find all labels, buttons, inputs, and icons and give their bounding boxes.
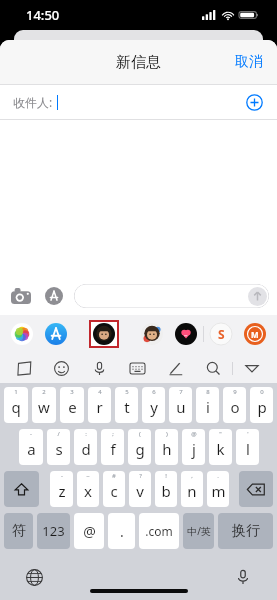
- staticText: q: [11, 397, 21, 417]
- button[interactable]: [135, 315, 169, 353]
- staticText: ): [166, 430, 168, 438]
- button[interactable]: 3: [60, 387, 84, 423]
- button[interactable]: !: [155, 471, 177, 507]
- button[interactable]: Add contact: [241, 89, 267, 115]
- button[interactable]: 123: [37, 513, 70, 549]
- button[interactable]: (: [128, 429, 151, 465]
- button[interactable]: 5: [115, 387, 138, 423]
- button[interactable]: ,: [181, 471, 203, 507]
- button[interactable]: 符: [4, 513, 33, 549]
- staticText: j: [192, 439, 196, 459]
- button[interactable]: [169, 315, 203, 353]
- button[interactable]: Hide keyboard: [233, 353, 271, 383]
- button[interactable]: 2: [32, 387, 56, 423]
- button[interactable]: Backspace: [239, 471, 273, 507]
- staticText: M: [251, 329, 259, 340]
- staticText: 9: [233, 388, 237, 396]
- staticText: -: [30, 430, 32, 438]
- staticText: a: [27, 439, 36, 459]
- staticText: /: [57, 430, 60, 438]
- button[interactable]: M: [238, 315, 272, 353]
- button[interactable]: 1: [4, 387, 28, 423]
- button[interactable]: App Store: [41, 283, 67, 309]
- staticText: (: [139, 430, 141, 438]
- button[interactable]: Send: [74, 284, 269, 308]
- staticText: :: [85, 430, 87, 438]
- button[interactable]: Dictation: [231, 565, 255, 589]
- button[interactable]: 换行: [218, 513, 273, 549]
- button[interactable]: Keyboard: [118, 353, 156, 383]
- button[interactable]: [39, 315, 73, 353]
- staticText: d: [81, 439, 91, 459]
- staticText: 0: [260, 388, 264, 396]
- button[interactable]: Emoji: [43, 353, 80, 383]
- button[interactable]: ': [236, 429, 259, 465]
- button[interactable]: Change keyboard: [22, 565, 46, 589]
- staticText: 换行: [232, 522, 260, 540]
- staticText: 14:50: [26, 6, 60, 24]
- button[interactable]: @: [74, 513, 104, 549]
- button[interactable]: @: [182, 429, 205, 465]
- button[interactable]: Search: [194, 353, 232, 383]
- staticText: p: [257, 397, 267, 417]
- button[interactable]: ): [155, 429, 178, 465]
- button[interactable]: 0: [250, 387, 273, 423]
- staticText: 符: [12, 522, 26, 540]
- button[interactable]: ;: [101, 429, 124, 465]
- staticText: f: [110, 439, 116, 459]
- staticText: e: [68, 397, 77, 417]
- button[interactable]: #: [103, 471, 125, 507]
- button[interactable]: /: [47, 429, 70, 465]
- staticText: b: [161, 481, 171, 501]
- button[interactable]: Send: [248, 287, 267, 306]
- button[interactable]: 8: [196, 387, 219, 423]
- staticText: ?: [139, 472, 142, 480]
- staticText: s: [55, 439, 63, 459]
- button[interactable]: Shift: [4, 471, 39, 507]
- button[interactable]: 4: [88, 387, 111, 423]
- button[interactable]: Handwriting: [156, 353, 194, 383]
- staticText: .: [217, 472, 219, 480]
- staticText: w: [38, 397, 50, 417]
- button[interactable]: 6: [142, 387, 165, 423]
- staticText: 2: [42, 388, 46, 396]
- button[interactable]: 中/英: [183, 513, 214, 549]
- button[interactable]: ": [209, 429, 232, 465]
- staticText: 7: [179, 388, 183, 396]
- button[interactable]: -: [50, 471, 73, 507]
- button[interactable]: .com: [139, 513, 179, 549]
- button[interactable]: [5, 315, 39, 353]
- staticText: 3: [70, 388, 74, 396]
- staticText: .com: [145, 523, 173, 539]
- button[interactable]: 9: [223, 387, 246, 423]
- staticText: h: [162, 439, 172, 459]
- button[interactable]: .: [207, 471, 229, 507]
- button[interactable]: :: [74, 429, 97, 465]
- button[interactable]: Sogou: [6, 353, 43, 383]
- staticText: 取消: [235, 53, 263, 71]
- staticText: k: [216, 439, 225, 459]
- button[interactable]: 7: [169, 387, 192, 423]
- button[interactable]: Voice input: [80, 353, 118, 383]
- staticText: #: [112, 472, 116, 480]
- staticText: o: [230, 397, 240, 417]
- staticText: @: [191, 430, 197, 438]
- button[interactable]: S: [204, 315, 238, 353]
- button[interactable]: ?: [129, 471, 151, 507]
- staticText: y: [150, 397, 158, 417]
- staticText: ": [219, 430, 222, 438]
- button[interactable]: 取消: [221, 43, 277, 81]
- staticText: 中/英: [187, 524, 211, 538]
- staticText: S: [218, 326, 225, 342]
- button[interactable]: -: [19, 429, 43, 465]
- staticText: 新信息: [116, 53, 161, 72]
- staticText: ;: [112, 430, 114, 438]
- button[interactable]: Camera: [8, 283, 34, 309]
- button[interactable]: .: [108, 513, 135, 549]
- staticText: 收件人:: [13, 94, 53, 110]
- staticText: 5: [125, 388, 129, 396]
- staticText: 4: [98, 388, 102, 396]
- staticText: t: [124, 397, 130, 417]
- button[interactable]: [73, 315, 135, 353]
- button[interactable]: ~: [77, 471, 99, 507]
